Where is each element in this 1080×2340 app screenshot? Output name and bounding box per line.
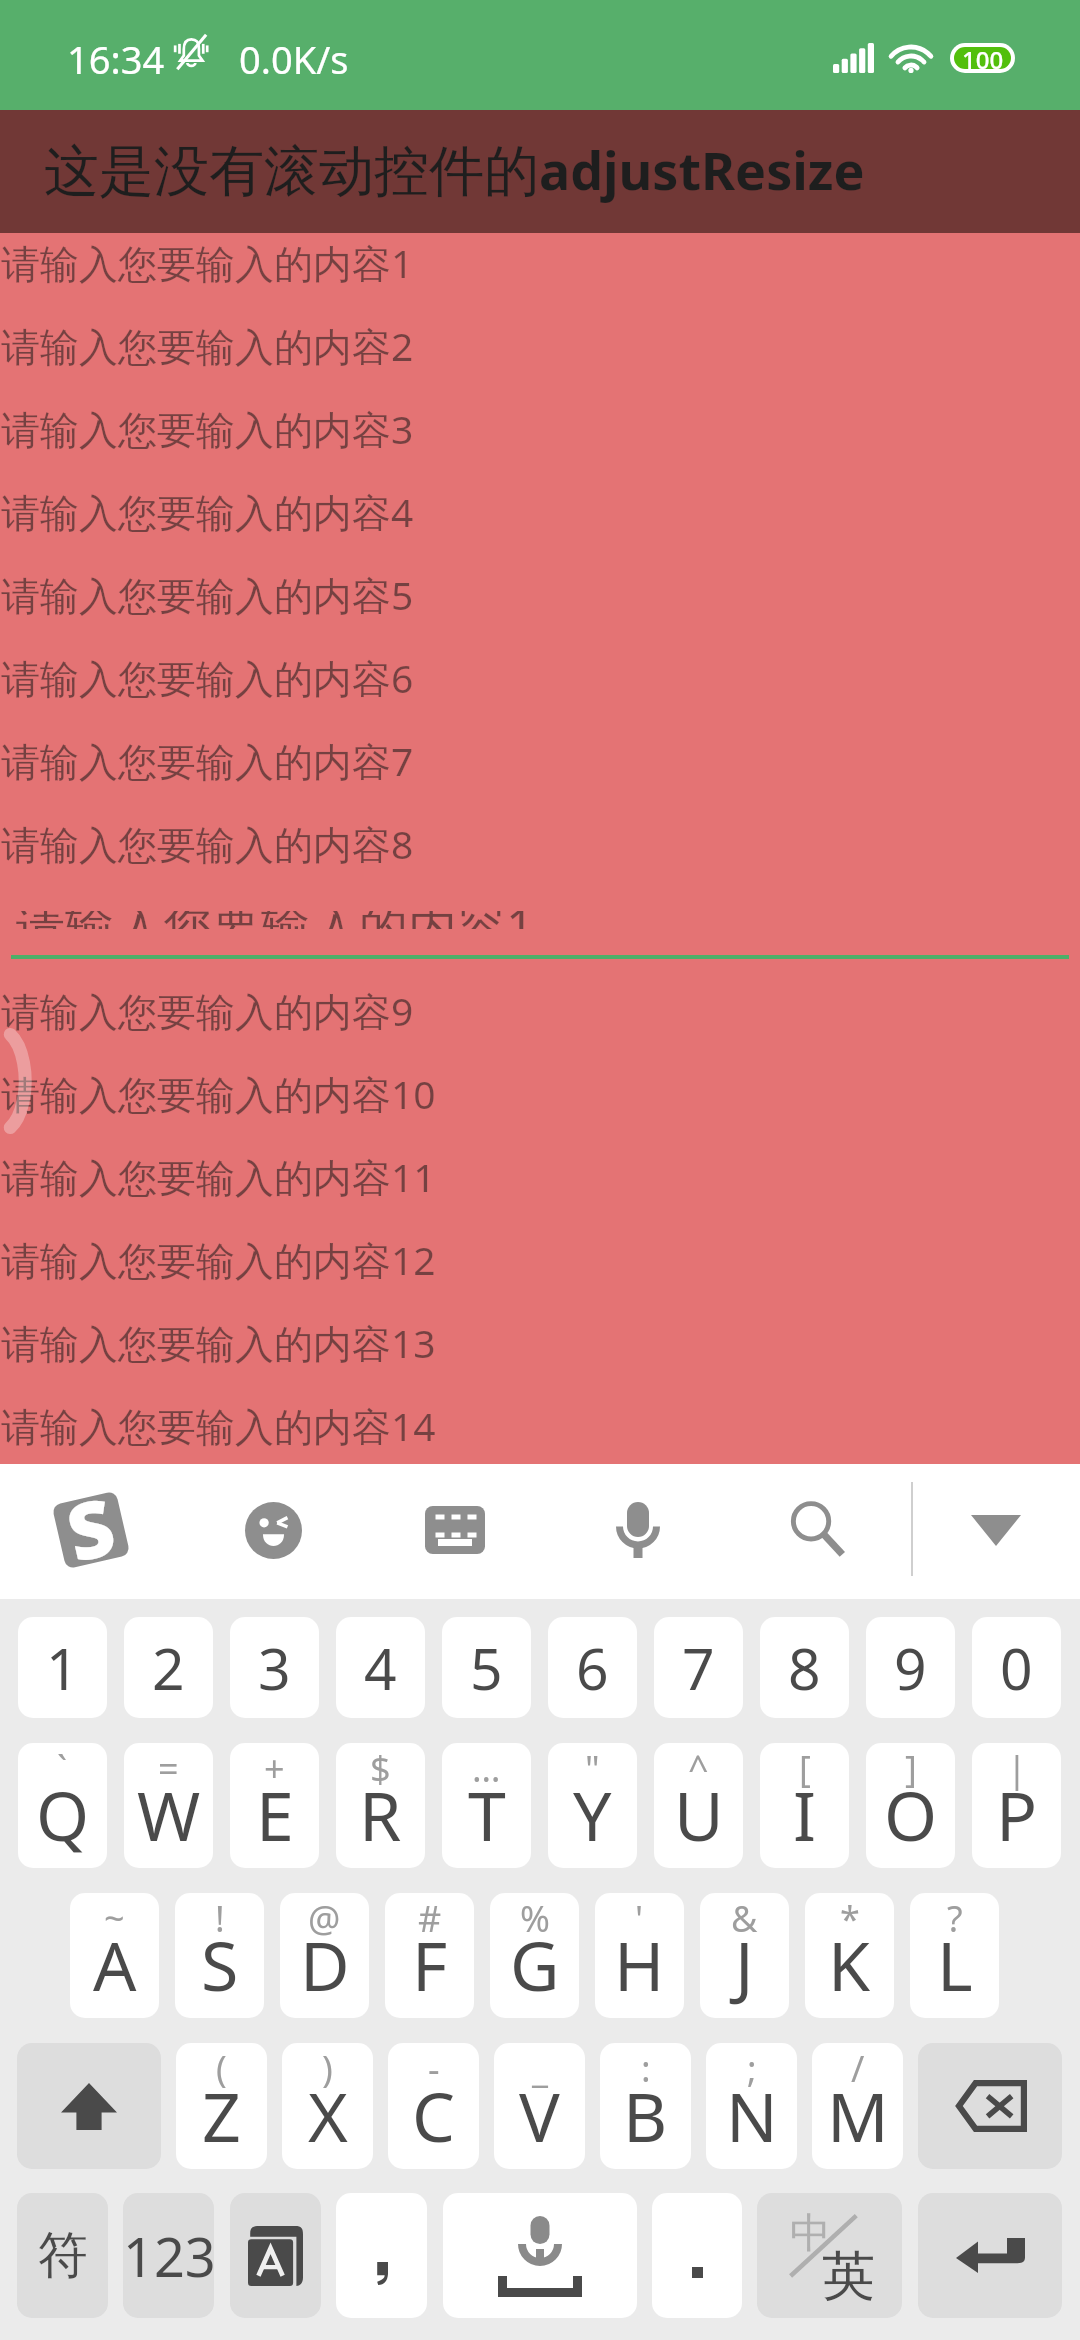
staticText: 16:34	[67, 33, 165, 85]
staticText: ~	[104, 1894, 125, 1943]
button[interactable]: =	[124, 1743, 213, 1868]
staticText: V	[519, 2069, 560, 2162]
staticText: _	[532, 2044, 548, 2093]
button[interactable]: 9	[866, 1617, 955, 1718]
staticText: 请输入您要输入的内容4	[1, 485, 414, 538]
button[interactable]: @	[280, 1893, 369, 2018]
button[interactable]: #	[385, 1893, 474, 2018]
button[interactable]: zhen	[757, 2193, 902, 2318]
staticText: O	[884, 1768, 938, 1861]
staticText: 请输入您要输入的内容12	[1, 1233, 436, 1286]
button[interactable]: 这是没有滚动控件的adjustResize	[0, 110, 1080, 233]
button[interactable]: shift	[17, 2043, 161, 2169]
button[interactable]: 0	[972, 1617, 1061, 1718]
button[interactable]: Keyboard layout	[395, 1470, 515, 1590]
button[interactable]: lang	[230, 2193, 321, 2318]
staticText: 9	[894, 1629, 927, 1707]
button[interactable]: !	[175, 1893, 264, 2018]
staticText: 中	[790, 2208, 831, 2260]
button[interactable]: Emoji	[213, 1470, 333, 1590]
staticText: G	[510, 1918, 560, 2011]
staticText: *	[840, 1894, 860, 1943]
button[interactable]: 3	[230, 1617, 319, 1718]
button[interactable]: 符	[17, 2193, 108, 2318]
staticText: 0	[1000, 1629, 1033, 1707]
staticText: #	[418, 1894, 442, 1943]
button[interactable]: -	[388, 2043, 479, 2169]
button[interactable]: Voice input	[578, 1470, 698, 1590]
staticText: 这是没有滚动控件的adjustResize	[44, 134, 865, 206]
staticText: 请输入您要输入的内容13	[1, 1316, 436, 1369]
staticText: …	[472, 1744, 501, 1793]
staticText: E	[256, 1768, 294, 1861]
button[interactable]: *	[805, 1893, 894, 2018]
button[interactable]: 7	[654, 1617, 743, 1718]
staticText: (	[216, 2044, 227, 2093]
button[interactable]: 5	[442, 1617, 531, 1718]
button[interactable]: comma	[336, 2193, 427, 2318]
button[interactable]: Hide keyboard	[936, 1470, 1056, 1590]
button[interactable]: `	[18, 1743, 107, 1868]
button[interactable]: )	[282, 2043, 373, 2169]
staticText: F	[412, 1918, 448, 2011]
staticText: 1	[46, 1629, 79, 1707]
staticText: $	[370, 1744, 391, 1793]
button[interactable]: &	[700, 1893, 789, 2018]
staticText: I	[793, 1768, 817, 1861]
staticText: Q	[36, 1768, 90, 1861]
button[interactable]: …	[442, 1743, 531, 1868]
button[interactable]: "	[548, 1743, 637, 1868]
button[interactable]: :	[600, 2043, 691, 2169]
button[interactable]: 4	[336, 1617, 425, 1718]
staticText: @	[308, 1894, 341, 1943]
button[interactable]: /	[812, 2043, 903, 2169]
button[interactable]: enter	[918, 2193, 1062, 2318]
button[interactable]: space	[443, 2193, 637, 2318]
staticText: 请输入您要输入的内容5	[1, 568, 414, 621]
button[interactable]: %	[490, 1893, 579, 2018]
staticText: N	[726, 2069, 778, 2162]
button[interactable]: 1	[18, 1617, 107, 1718]
staticText: :	[641, 2044, 651, 2093]
button[interactable]: ]	[866, 1743, 955, 1868]
staticText: `	[57, 1744, 68, 1793]
button[interactable]: (	[176, 2043, 267, 2169]
button[interactable]: 6	[548, 1617, 637, 1718]
button[interactable]: ?	[910, 1893, 999, 2018]
staticText: %	[520, 1894, 550, 1943]
button[interactable]: |	[972, 1743, 1061, 1868]
staticText: D	[300, 1918, 350, 2011]
staticText: W	[137, 1768, 201, 1861]
staticText: ^	[688, 1744, 709, 1793]
staticText: '	[635, 1894, 644, 1943]
button[interactable]: '	[595, 1893, 684, 2018]
staticText: 英	[822, 2243, 875, 2310]
button[interactable]: Search	[758, 1470, 878, 1590]
button[interactable]: [	[760, 1743, 849, 1868]
staticText: 请输入您要输入的内容6	[1, 651, 414, 704]
staticText: S	[201, 1918, 239, 2011]
button[interactable]: 8	[760, 1617, 849, 1718]
button[interactable]: 123	[123, 2193, 214, 2318]
staticText: 请输入您要输入的内容9	[1, 984, 414, 1037]
button[interactable]: 2	[124, 1617, 213, 1718]
staticText: 4	[364, 1629, 397, 1707]
staticText: C	[412, 2069, 455, 2162]
button[interactable]: ;	[706, 2043, 797, 2169]
staticText: H	[614, 1918, 665, 2011]
button[interactable]: del	[918, 2043, 1062, 2169]
button[interactable]: dot	[652, 2193, 742, 2318]
staticText: 请输入您要输入的内容8	[1, 817, 414, 870]
button[interactable]: $	[336, 1743, 425, 1868]
staticText: 请输入您要输入的内容1	[16, 911, 535, 929]
staticText: 0.0K/s	[239, 33, 349, 85]
button[interactable]: Sogou input	[31, 1470, 151, 1590]
button[interactable]: _	[494, 2043, 585, 2169]
button[interactable]: +	[230, 1743, 319, 1868]
staticText: ;	[747, 2044, 757, 2093]
button[interactable]: ~	[70, 1893, 159, 2018]
staticText: "	[585, 1744, 600, 1793]
button[interactable]: ^	[654, 1743, 743, 1868]
staticText: B	[623, 2069, 668, 2162]
staticText: 请输入您要输入的内容3	[1, 402, 414, 455]
